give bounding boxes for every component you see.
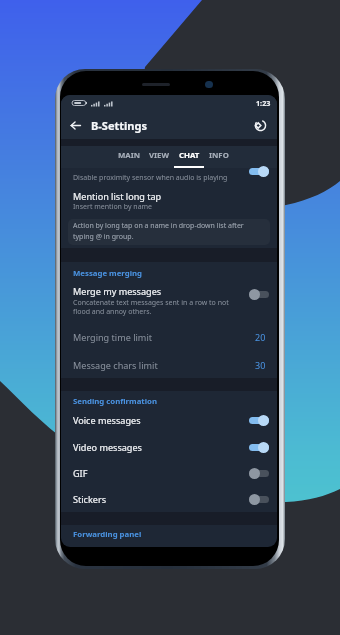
button[interactable]: Message chars limit xyxy=(61,351,277,378)
button[interactable]: Back xyxy=(65,115,85,135)
button[interactable]: Toggle on xyxy=(249,415,269,426)
button[interactable]: Mention list long tap xyxy=(61,186,277,223)
button[interactable]: Toggle off xyxy=(249,289,269,300)
button[interactable]: INFO xyxy=(204,146,234,168)
staticText: 20 xyxy=(255,331,266,343)
button[interactable]: Toggle off xyxy=(249,494,269,505)
staticText: CHAT xyxy=(179,150,200,161)
button[interactable]: MAIN xyxy=(114,146,144,168)
staticText: Forwarding panel xyxy=(73,529,142,540)
staticText: 1:23 xyxy=(256,98,271,108)
staticText: 30 xyxy=(255,359,266,371)
staticText: Action by long tap on a name in drop-dow… xyxy=(73,221,249,241)
staticText: INFO xyxy=(209,150,229,161)
button[interactable]: VIEW xyxy=(144,146,174,168)
staticText: Voice messages xyxy=(73,414,249,426)
button[interactable]: Toggle on xyxy=(249,442,269,453)
button[interactable]: Voice messages xyxy=(61,407,277,433)
staticText: MAIN xyxy=(118,150,141,161)
staticText: Message merging xyxy=(73,268,143,279)
button[interactable]: Forwarding panel xyxy=(61,525,277,547)
staticText: GIF xyxy=(73,467,249,479)
button[interactable]: Toggle on xyxy=(249,166,269,177)
button[interactable]: Video messages xyxy=(61,434,277,460)
button[interactable]: Disable proximity sensor when audio is p… xyxy=(61,168,277,181)
button[interactable]: Merging time limit xyxy=(61,323,277,350)
staticText: Message chars limit xyxy=(73,359,255,371)
staticText: Insert mention by name xyxy=(73,202,153,212)
staticText: B-Settings xyxy=(91,118,147,133)
button[interactable]: Reset settings xyxy=(250,115,270,135)
staticText: Mention list long tap xyxy=(73,190,162,202)
staticText: Merging time limit xyxy=(73,331,255,343)
staticText: Stickers xyxy=(73,493,249,505)
button[interactable]: Toggle off xyxy=(249,468,269,479)
staticText: Sending confirmation xyxy=(73,396,158,407)
button[interactable]: GIF xyxy=(61,460,277,486)
staticText: Merge my messages xyxy=(73,285,162,297)
button[interactable]: Merge my messages xyxy=(61,281,277,321)
button[interactable]: CHAT xyxy=(174,146,204,168)
staticText: Video messages xyxy=(73,441,249,453)
staticText: Concatenate text messages sent in a row … xyxy=(73,298,243,316)
staticText: VIEW xyxy=(149,150,170,161)
button[interactable]: Stickers xyxy=(61,486,277,512)
staticText: Disable proximity sensor when audio is p… xyxy=(73,173,228,183)
